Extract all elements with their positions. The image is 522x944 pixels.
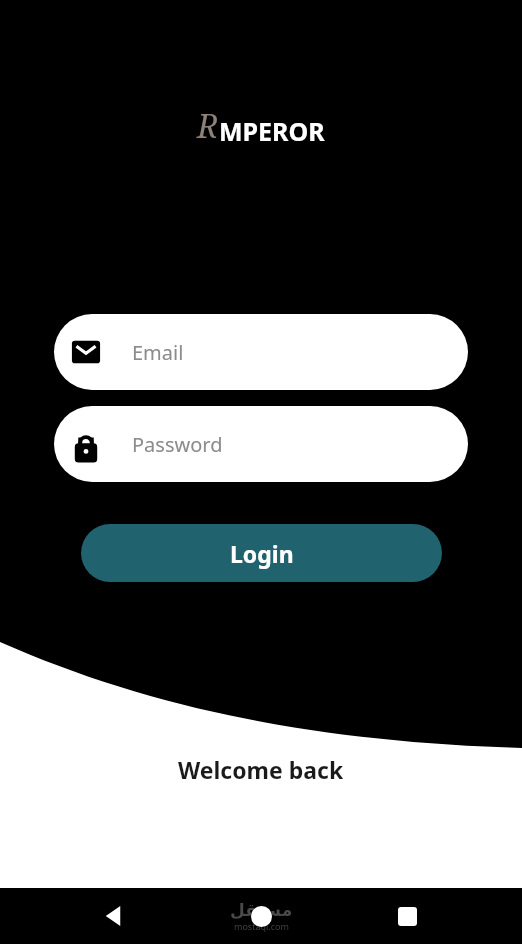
- staticText: Welcome back: [178, 754, 344, 785]
- button[interactable]: Email: [54, 314, 468, 390]
- button[interactable]: Password: [54, 406, 468, 482]
- staticText: Login: [230, 538, 294, 569]
- staticText: mostaqi.com: [234, 920, 289, 932]
- staticText: MPEROR: [219, 114, 325, 148]
- staticText: Password: [132, 431, 223, 458]
- staticText: Email: [132, 339, 184, 366]
- staticText: مستقل: [230, 900, 293, 920]
- staticText: R: [197, 104, 219, 148]
- button[interactable]: Back: [93, 894, 137, 938]
- button[interactable]: Home: [241, 896, 281, 936]
- button[interactable]: Recent apps: [385, 894, 429, 938]
- button[interactable]: Login: [81, 524, 442, 582]
